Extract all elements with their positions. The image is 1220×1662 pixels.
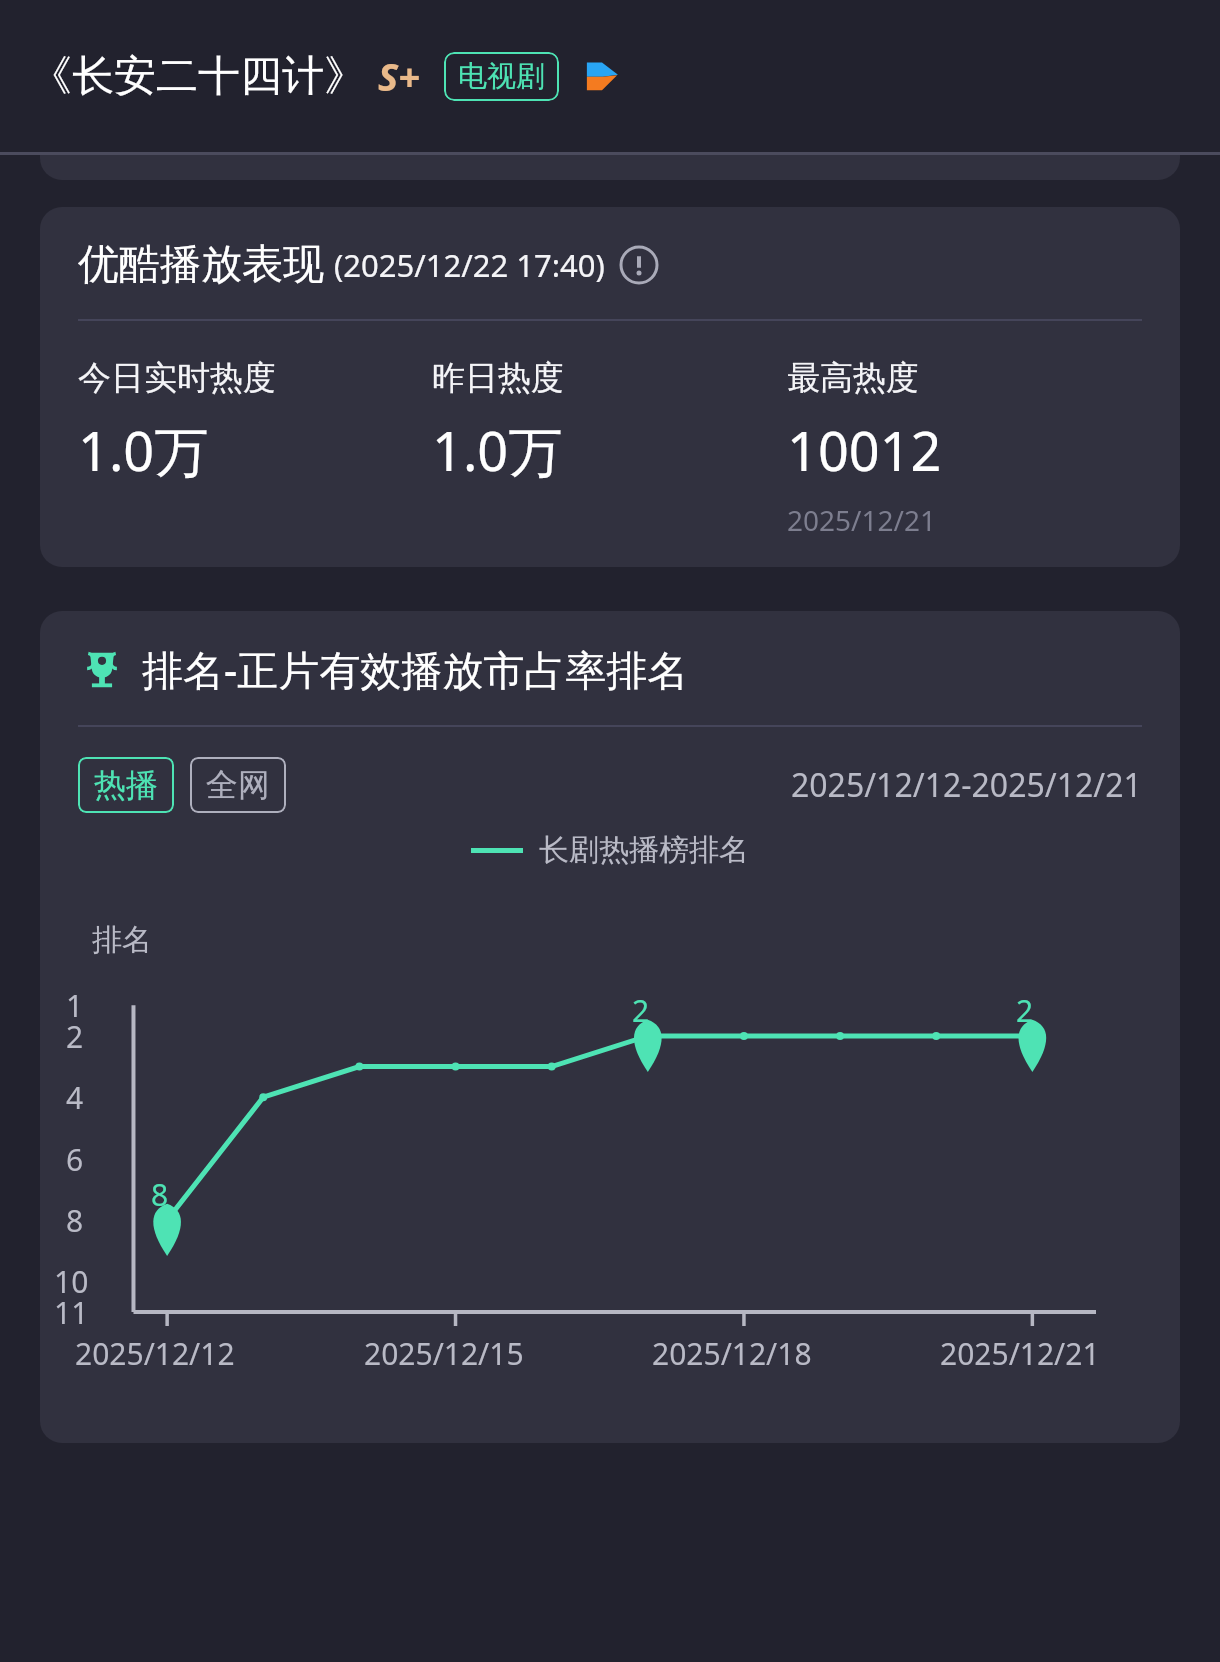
staticText: 最高热度 bbox=[787, 357, 919, 399]
staticText: S+ bbox=[378, 50, 420, 102]
staticText: 长剧热播榜排名 bbox=[539, 831, 749, 869]
staticText: 2025/12/15 bbox=[364, 1333, 524, 1374]
staticText: 2025/12/12-2025/12/21 bbox=[791, 763, 1142, 807]
button[interactable]: 热播 bbox=[78, 757, 174, 813]
staticText: 排名 bbox=[92, 921, 152, 959]
staticText: 排名-正片有效播放市占率排名 bbox=[142, 641, 689, 697]
staticText: 全网 bbox=[206, 765, 270, 805]
staticText: 10 bbox=[54, 1261, 89, 1302]
staticText: 11 bbox=[54, 1292, 89, 1333]
staticText: 8 bbox=[151, 1174, 169, 1215]
staticText: 今日实时热度 bbox=[78, 357, 276, 399]
staticText: 1.0万 bbox=[78, 413, 209, 487]
staticText: 《长安二十四计》 bbox=[30, 50, 366, 103]
staticText: 2 bbox=[66, 1016, 84, 1057]
button[interactable]: 电视剧 bbox=[444, 52, 559, 101]
staticText: 2 bbox=[632, 990, 650, 1031]
staticText: (2025/12/22 17:40) bbox=[334, 244, 605, 286]
staticText: 6 bbox=[66, 1139, 84, 1180]
staticText: 电视剧 bbox=[458, 58, 545, 95]
staticText: 2025/12/21 bbox=[787, 501, 936, 539]
staticText: 4 bbox=[66, 1077, 84, 1118]
button[interactable]: 说明 bbox=[619, 245, 659, 285]
staticText: 10012 bbox=[787, 413, 942, 487]
staticText: 昨日热度 bbox=[432, 357, 564, 399]
staticText: 热播 bbox=[94, 765, 158, 805]
staticText: 2 bbox=[1016, 990, 1034, 1031]
staticText: 2025/12/21 bbox=[940, 1333, 1100, 1374]
staticText: 优酷播放表现 bbox=[78, 239, 324, 291]
button[interactable]: 优酷 bbox=[581, 55, 623, 97]
staticText: 1 bbox=[66, 985, 84, 1026]
staticText: 1.0万 bbox=[432, 413, 563, 487]
staticText: 8 bbox=[66, 1200, 84, 1241]
button[interactable]: 全网 bbox=[190, 757, 286, 813]
staticText: 2025/12/18 bbox=[652, 1333, 812, 1374]
staticText: 2025/12/12 bbox=[75, 1333, 235, 1374]
